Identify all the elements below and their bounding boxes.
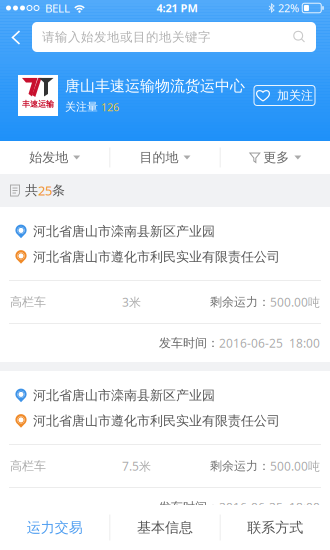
- staticText: 河北省唐山市滦南县新区产业园: [33, 223, 215, 240]
- staticText: 7.5米: [122, 458, 151, 474]
- staticText: 基本信息: [137, 519, 193, 536]
- staticText: 500.00吨: [270, 458, 320, 474]
- staticText: 剩余运力：: [210, 458, 270, 473]
- button[interactable]: 基本信息: [110, 505, 220, 550]
- button[interactable]: 联系方式: [221, 505, 330, 550]
- staticText: 河北省唐山市遵化市利民实业有限责任公司: [33, 413, 280, 429]
- staticText: 高栏车: [10, 458, 46, 473]
- staticText: 3米: [122, 294, 141, 310]
- button[interactable]: 加关注: [254, 85, 315, 105]
- staticText: 高栏车: [10, 294, 46, 309]
- staticText: 22%: [275, 0, 302, 15]
- staticText: 河北省唐山市遵化市利民实业有限责任公司: [33, 249, 280, 265]
- staticText: BELL: [39, 0, 73, 16]
- staticText: 更多: [263, 149, 289, 166]
- staticText: 剩余运力：: [210, 294, 270, 309]
- staticText: 关注量: [65, 100, 98, 114]
- staticText: 发车时间：: [159, 499, 219, 514]
- staticText: 25: [38, 182, 52, 199]
- staticText: 联系方式: [247, 519, 303, 536]
- staticText: 2016-06-25 18:00: [219, 335, 320, 351]
- staticText: 运力交易: [27, 519, 83, 536]
- staticText: 发车时间：: [159, 335, 219, 350]
- staticText: 2016-06-25 18:00: [219, 499, 320, 515]
- button[interactable]: 河北省唐山市滦南县新区产业园: [0, 371, 330, 526]
- staticText: 500.00吨: [270, 294, 320, 310]
- staticText: 共: [25, 182, 38, 199]
- staticText: 126: [101, 99, 119, 114]
- staticText: 丰速运输: [22, 99, 54, 109]
- staticText: 目的地: [139, 149, 178, 166]
- staticText: 条: [52, 182, 65, 199]
- button[interactable]: 请输入始发地或目的地关键字: [32, 22, 316, 52]
- button[interactable]: 始发地: [0, 141, 109, 174]
- button[interactable]: Back: [0, 22, 32, 52]
- button[interactable]: 更多: [221, 141, 330, 174]
- button[interactable]: 目的地: [110, 141, 220, 174]
- staticText: 河北省唐山市滦南县新区产业园: [33, 387, 215, 404]
- button[interactable]: 运力交易: [0, 505, 109, 550]
- staticText: 4:21 PM: [156, 0, 197, 15]
- staticText: 请输入始发地或目的地关键字: [42, 29, 211, 45]
- staticText: 唐山丰速运输物流货运中心: [65, 77, 245, 95]
- button[interactable]: 河北省唐山市滦南县新区产业园: [0, 207, 330, 362]
- staticText: 加关注: [277, 88, 313, 103]
- staticText: 始发地: [29, 149, 68, 166]
